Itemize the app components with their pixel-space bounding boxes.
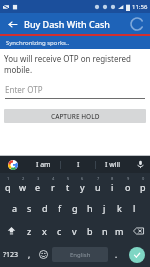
staticText: k — [117, 202, 122, 214]
button[interactable]: 3 — [30, 173, 45, 196]
staticText: v — [72, 225, 77, 237]
button[interactable]: v — [67, 219, 82, 242]
button[interactable]: n — [97, 219, 112, 242]
button[interactable]: . — [109, 242, 124, 267]
button[interactable]: b — [82, 219, 97, 242]
staticText: 7 — [97, 176, 100, 181]
staticText: z — [27, 225, 32, 237]
button[interactable]: English — [52, 247, 108, 262]
staticText: t — [66, 181, 70, 193]
staticText: w — [19, 181, 27, 193]
staticText: g — [72, 202, 78, 214]
staticText: Buy Dash With Cash — [24, 18, 110, 30]
staticText: o — [125, 181, 131, 193]
staticText: 9 — [127, 176, 130, 181]
staticText: , — [28, 249, 31, 260]
staticText: I — [77, 160, 80, 170]
button[interactable]: g — [67, 196, 82, 219]
staticText: 5 — [67, 176, 70, 181]
button[interactable]: Google — [0, 156, 26, 173]
staticText: ?123 — [3, 250, 19, 260]
staticText: 4 — [52, 176, 55, 181]
button[interactable]: s — [22, 196, 37, 219]
staticText: 1 — [7, 176, 10, 181]
button[interactable]: Back — [5, 17, 19, 31]
button[interactable]: I — [61, 156, 95, 173]
staticText: 2 — [22, 176, 25, 181]
staticText: x — [42, 225, 47, 237]
staticText: 0 — [142, 176, 145, 181]
staticText: e — [35, 181, 41, 193]
button[interactable]: k — [112, 196, 127, 219]
staticText: y — [80, 181, 85, 193]
staticText: d — [42, 202, 48, 214]
staticText: English — [70, 251, 91, 259]
button[interactable]: h — [82, 196, 97, 219]
button[interactable]: 9 — [120, 173, 135, 196]
button[interactable]: l — [127, 196, 142, 219]
button[interactable]: I am — [26, 156, 60, 173]
staticText: s — [27, 202, 32, 214]
staticText: CAPTURE HOLD — [51, 112, 100, 121]
button[interactable]: x — [37, 219, 52, 242]
staticText: 11:56 — [132, 3, 148, 11]
staticText: b — [87, 225, 93, 237]
button[interactable]: 1 — [0, 173, 15, 196]
button[interactable]: 6 — [75, 173, 90, 196]
button[interactable]: 5 — [60, 173, 75, 196]
staticText: m — [115, 225, 124, 237]
staticText: u — [95, 181, 101, 193]
staticText: c — [57, 225, 62, 237]
staticText: h — [87, 202, 93, 214]
button[interactable]: Backspace — [127, 219, 150, 242]
button[interactable]: Loading — [129, 16, 145, 32]
staticText: i — [111, 181, 114, 193]
staticText: 8 — [111, 176, 114, 181]
staticText: q — [5, 181, 11, 193]
button[interactable]: d — [37, 196, 52, 219]
staticText: Synchronizing sporks.. — [6, 39, 70, 47]
button[interactable]: m — [112, 219, 127, 242]
button[interactable]: 0 — [135, 173, 150, 196]
staticText: 6 — [81, 176, 84, 181]
staticText: n — [102, 225, 108, 237]
button[interactable]: 2 — [15, 173, 30, 196]
button[interactable]: Enter — [124, 242, 150, 267]
button[interactable]: f — [52, 196, 67, 219]
button[interactable]: z — [22, 219, 37, 242]
staticText: You will receive OTP on registered mobil… — [4, 53, 146, 75]
button[interactable]: a — [7, 196, 22, 219]
button[interactable]: c — [52, 219, 67, 242]
button[interactable]: I will — [96, 156, 130, 173]
button[interactable]: , — [22, 242, 36, 267]
staticText: 3 — [37, 176, 40, 181]
staticText: a — [12, 202, 18, 214]
button[interactable]: j — [97, 196, 112, 219]
staticText: I am — [36, 160, 51, 170]
staticText: . — [115, 249, 118, 260]
button[interactable]: Voice input — [130, 156, 150, 173]
staticText: p — [140, 181, 146, 193]
staticText: l — [133, 202, 136, 214]
button[interactable]: CAPTURE HOLD — [4, 109, 146, 123]
staticText: f — [58, 202, 62, 214]
button[interactable]: ?123 — [0, 242, 22, 267]
staticText: j — [103, 202, 106, 214]
staticText: Enter OTP — [5, 84, 43, 95]
button[interactable]: 4 — [45, 173, 60, 196]
staticText: I will — [105, 160, 121, 170]
staticText: r — [51, 181, 55, 193]
button[interactable]: 8 — [105, 173, 120, 196]
button[interactable]: 7 — [90, 173, 105, 196]
button[interactable]: Emoji — [36, 242, 51, 267]
button[interactable]: Shift — [0, 219, 22, 242]
